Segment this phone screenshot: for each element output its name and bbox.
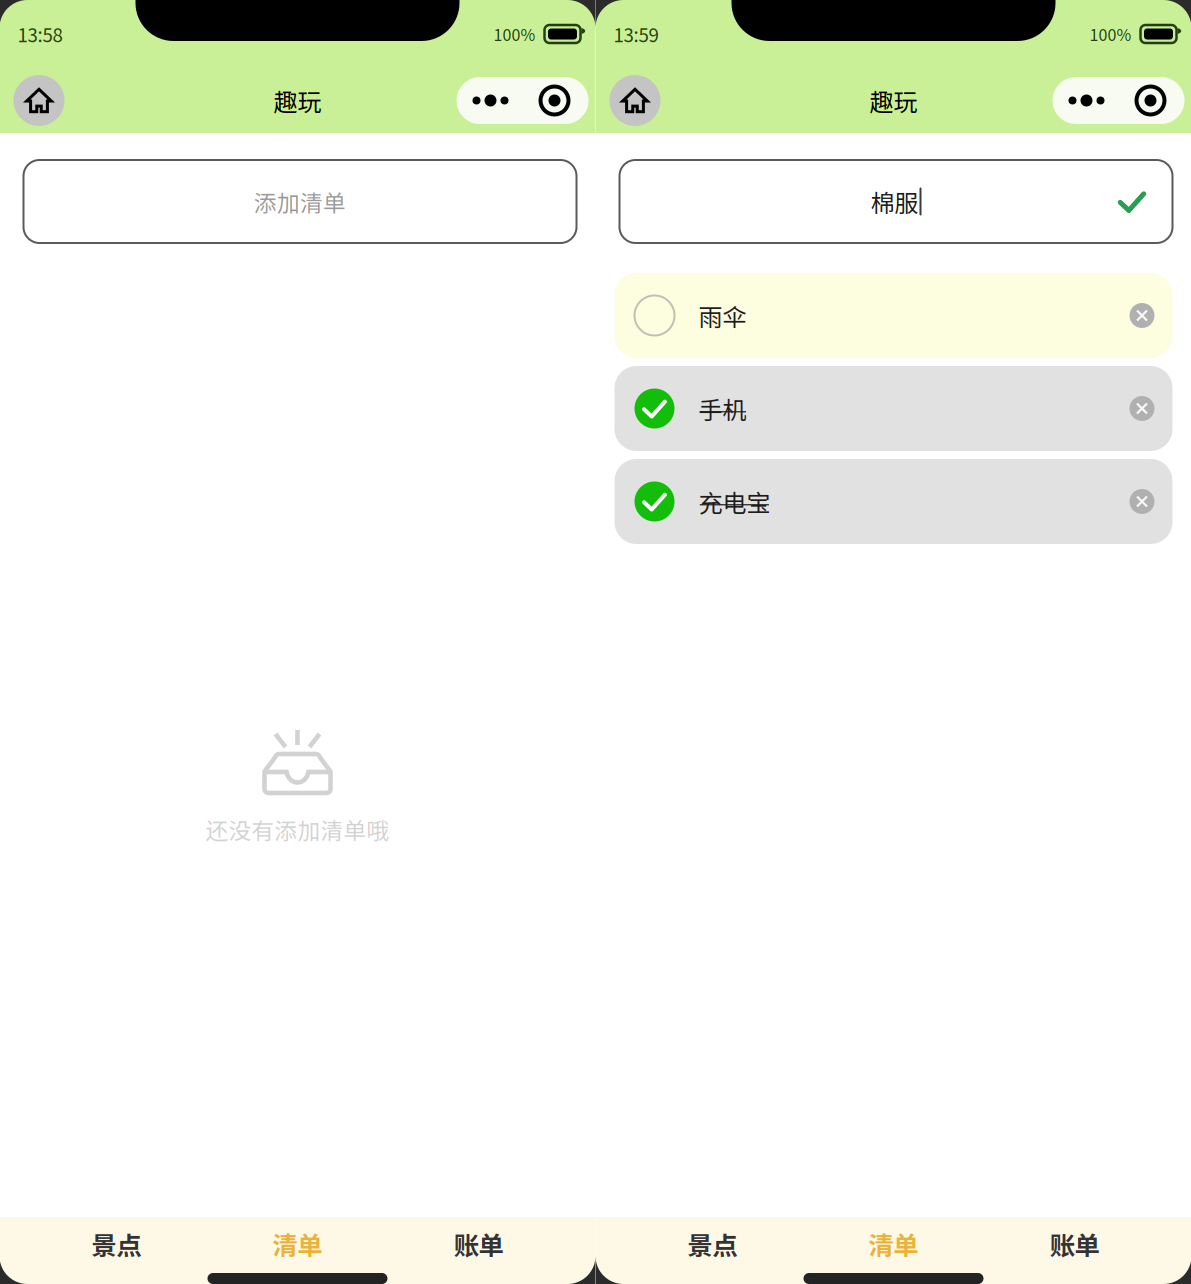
staticText: 100%: [493, 22, 535, 46]
button[interactable]: Home: [609, 75, 660, 126]
button[interactable]: 棉服: [619, 160, 1172, 243]
staticText: 景点: [687, 1226, 737, 1262]
button[interactable]: 手机: [614, 366, 1172, 451]
staticText: 清单: [272, 1226, 322, 1262]
staticText: 充电宝: [698, 484, 770, 519]
staticText: 13:58: [17, 20, 62, 47]
button[interactable]: Home: [13, 75, 64, 126]
staticText: 100%: [1089, 22, 1131, 46]
button[interactable]: 账单: [388, 1223, 569, 1265]
staticText: 趣玩: [869, 83, 917, 118]
button[interactable]: 充电宝: [614, 459, 1172, 544]
staticText: 13:59: [613, 20, 658, 47]
staticText: 棉服: [870, 184, 918, 219]
button[interactable]: 清单: [207, 1223, 388, 1265]
staticText: 手机: [698, 391, 746, 426]
button[interactable]: 景点: [621, 1223, 803, 1265]
staticText: 还没有添加清单哦: [205, 813, 389, 846]
button[interactable]: 清单: [803, 1223, 984, 1265]
staticText: 景点: [91, 1226, 141, 1262]
staticText: 清单: [868, 1226, 918, 1262]
button[interactable]: 雨伞: [614, 273, 1172, 358]
button[interactable]: 添加清单: [23, 160, 576, 243]
button[interactable]: 账单: [984, 1223, 1165, 1265]
staticText: 雨伞: [698, 298, 746, 333]
staticText: 账单: [1050, 1226, 1100, 1262]
button[interactable]: 景点: [25, 1223, 207, 1265]
staticText: 趣玩: [273, 83, 321, 118]
staticText: 添加清单: [254, 185, 346, 218]
button[interactable]: Menu: [456, 77, 588, 124]
staticText: 账单: [454, 1226, 504, 1262]
button[interactable]: Menu: [1052, 77, 1184, 124]
